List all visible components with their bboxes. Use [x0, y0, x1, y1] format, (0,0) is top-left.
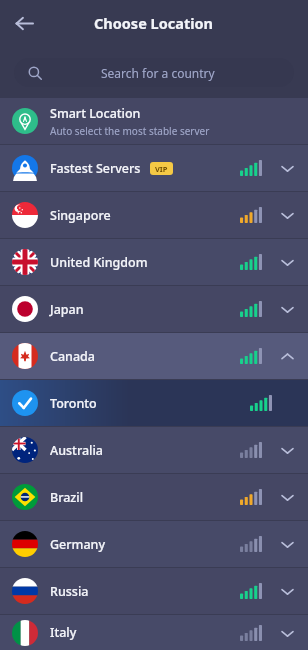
button[interactable]: Smart Location	[0, 98, 308, 144]
button[interactable]: Toronto	[0, 380, 308, 426]
button[interactable]: Expand	[272, 435, 302, 465]
staticText: Australia	[50, 442, 103, 459]
button[interactable]: Expand	[272, 200, 302, 230]
staticText: Auto select the most stable server	[50, 124, 210, 138]
staticText: VIP	[155, 164, 168, 174]
button[interactable]: Back	[6, 5, 42, 41]
button[interactable]: Expand	[272, 247, 302, 277]
button[interactable]: Russia	[0, 568, 308, 614]
staticText: Italy	[50, 624, 77, 641]
staticText: Germany	[50, 536, 105, 553]
staticText: Fastest Servers	[50, 160, 141, 177]
staticText: Smart Location	[50, 105, 141, 122]
button[interactable]: Expand	[272, 576, 302, 606]
staticText: Choose Location	[94, 13, 214, 33]
button[interactable]: Italy	[0, 615, 308, 650]
button[interactable]: Germany	[0, 521, 308, 567]
button[interactable]: Expand	[272, 529, 302, 559]
button[interactable]: Expand	[272, 153, 302, 183]
button[interactable]: Collapse	[272, 341, 302, 371]
staticText: Search for a country	[101, 65, 215, 81]
button[interactable]: Brazil	[0, 474, 308, 520]
staticText: United Kingdom	[50, 254, 148, 271]
button[interactable]: Australia	[0, 427, 308, 473]
button[interactable]: Singapore	[0, 192, 308, 238]
button[interactable]: Expand	[272, 294, 302, 324]
staticText: Singapore	[50, 207, 111, 224]
staticText: Brazil	[50, 489, 84, 506]
button[interactable]: Expand	[272, 482, 302, 512]
button[interactable]: Japan	[0, 286, 308, 332]
button[interactable]: Fastest Servers	[0, 145, 308, 191]
staticText: Japan	[50, 301, 84, 318]
staticText: Canada	[50, 348, 95, 365]
button[interactable]: Canada	[0, 333, 308, 379]
staticText: Toronto	[50, 395, 97, 412]
staticText: Russia	[50, 583, 89, 600]
button[interactable]: Search for a country	[14, 58, 294, 87]
button[interactable]: Expand	[272, 618, 302, 648]
button[interactable]: United Kingdom	[0, 239, 308, 285]
